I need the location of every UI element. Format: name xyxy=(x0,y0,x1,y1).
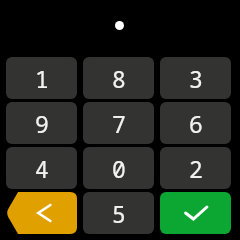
staticText: 8 xyxy=(112,63,126,94)
staticText: 6 xyxy=(189,108,203,139)
staticText: 3 xyxy=(189,63,203,94)
staticText: 0 xyxy=(112,153,126,184)
button[interactable]: 3 xyxy=(160,57,231,99)
button[interactable]: 1 xyxy=(6,57,77,99)
button[interactable]: 4 xyxy=(6,147,77,189)
staticText: 4 xyxy=(35,153,49,184)
staticText: 9 xyxy=(35,108,49,139)
button[interactable]: 5 xyxy=(83,192,154,234)
staticText: 1 xyxy=(35,63,49,94)
staticText: 7 xyxy=(112,108,126,139)
button[interactable]: Backspace xyxy=(6,192,77,234)
button[interactable]: 0 xyxy=(83,147,154,189)
button[interactable]: 8 xyxy=(83,57,154,99)
button[interactable]: Confirm xyxy=(160,192,231,234)
staticText: 2 xyxy=(189,153,203,184)
button[interactable]: 6 xyxy=(160,102,231,144)
button[interactable]: 9 xyxy=(6,102,77,144)
staticText: 5 xyxy=(112,198,126,229)
button[interactable]: 2 xyxy=(160,147,231,189)
button[interactable]: 7 xyxy=(83,102,154,144)
